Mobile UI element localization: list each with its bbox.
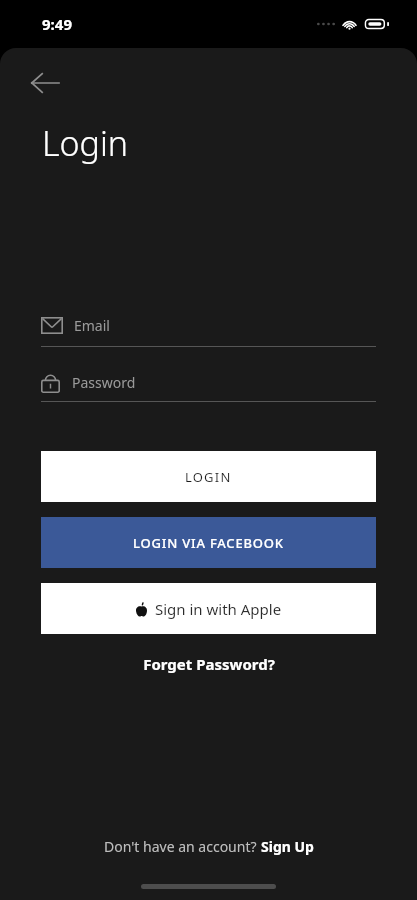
button[interactable]: Email <box>41 316 376 347</box>
staticText: Login <box>42 120 129 166</box>
staticText: Sign Up <box>261 837 314 856</box>
button[interactable]: Don't have an account? <box>0 831 417 862</box>
button[interactable]: Forget Password? <box>133 648 285 680</box>
staticText: Forget Password? <box>143 654 275 674</box>
staticText: Sign in with Apple <box>155 599 282 619</box>
button[interactable]: Password <box>41 372 376 402</box>
staticText: Don't have an account? <box>104 837 261 856</box>
staticText: 9:49 <box>42 14 72 34</box>
button[interactable]: LOGIN VIA FACEBOOK <box>41 517 376 568</box>
staticText: Email <box>74 316 110 335</box>
staticText: LOGIN <box>185 468 232 486</box>
button[interactable]: Back <box>22 60 68 106</box>
button[interactable]: LOGIN <box>41 451 376 502</box>
button[interactable]: Sign in with Apple <box>41 583 376 634</box>
staticText: LOGIN VIA FACEBOOK <box>133 534 284 552</box>
staticText: Password <box>72 373 136 392</box>
